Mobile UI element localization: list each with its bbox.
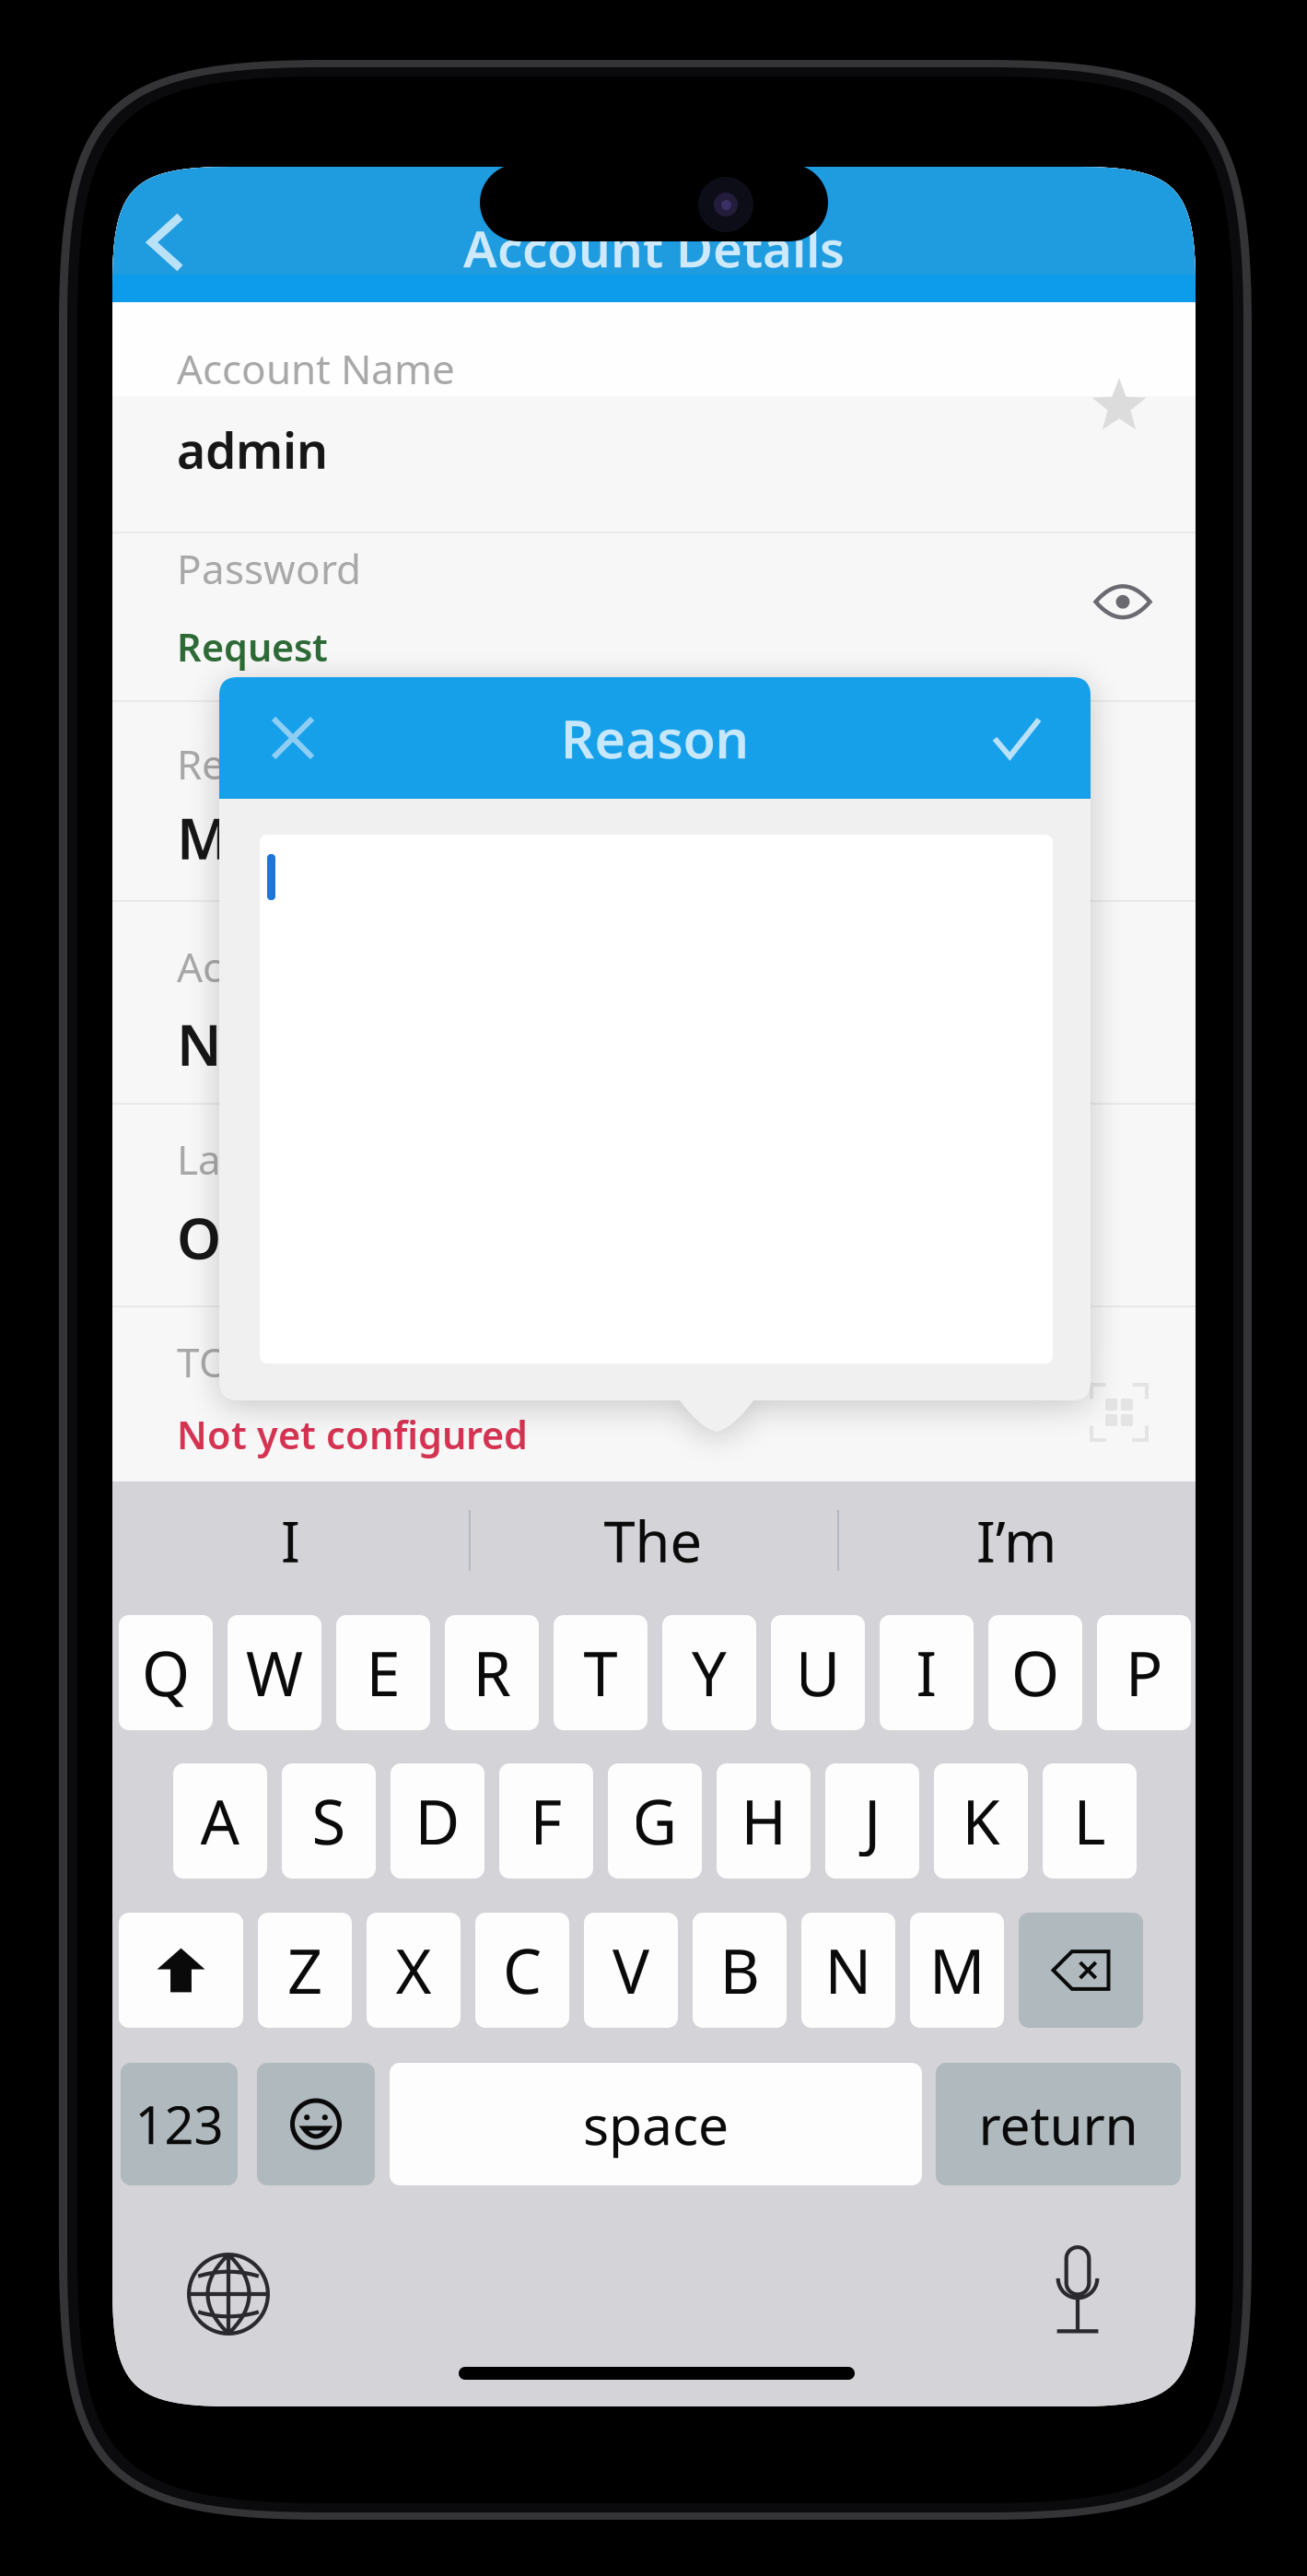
staticText: Account Name: [177, 342, 455, 395]
button[interactable]: return: [936, 2063, 1181, 2185]
staticText: Z: [287, 1929, 322, 2011]
staticText: R: [473, 1632, 511, 1713]
button[interactable]: C: [475, 1913, 569, 2028]
staticText: N: [825, 1929, 872, 2011]
staticText: Not yet configured: [177, 1409, 528, 1460]
button[interactable]: N: [801, 1913, 895, 2028]
button[interactable]: T: [554, 1615, 648, 1730]
staticText: C: [503, 1929, 542, 2011]
button[interactable]: H: [717, 1763, 811, 1879]
button[interactable]: Emoji: [257, 2063, 375, 2185]
staticText: Reason: [560, 703, 749, 773]
button[interactable]: P: [1097, 1615, 1191, 1730]
button[interactable]: Dictation: [1052, 2242, 1103, 2337]
button[interactable]: D: [391, 1763, 484, 1879]
staticText: P: [1126, 1632, 1162, 1713]
staticText: 123: [135, 2090, 223, 2158]
staticText: F: [530, 1780, 562, 1862]
button[interactable]: Shift: [119, 1913, 243, 2028]
staticText: E: [366, 1632, 400, 1713]
button[interactable]: S: [282, 1763, 376, 1879]
staticText: O: [1011, 1632, 1059, 1713]
button[interactable]: G: [608, 1763, 702, 1879]
staticText: S: [312, 1780, 346, 1862]
staticText: M: [929, 1929, 985, 2011]
staticText: I’m: [976, 1503, 1056, 1578]
button[interactable]: I’m: [837, 1481, 1196, 1599]
staticText: I: [916, 1632, 937, 1713]
button[interactable]: Q: [119, 1615, 213, 1730]
button[interactable]: Cancel: [219, 677, 367, 799]
button[interactable]: B: [693, 1913, 787, 2028]
button[interactable]: M: [910, 1913, 1004, 2028]
staticText: Account Details: [463, 214, 845, 281]
button[interactable]: L: [1043, 1763, 1137, 1879]
staticText: The: [604, 1503, 702, 1578]
staticText: Last Login: [177, 1132, 371, 1186]
staticText: A: [200, 1780, 240, 1862]
button[interactable]: I: [112, 1481, 469, 1599]
button[interactable]: W: [228, 1615, 321, 1730]
staticText: Remote Address: [177, 737, 488, 791]
staticText: Y: [692, 1632, 727, 1713]
button[interactable]: 123: [121, 2063, 238, 2185]
staticText: K: [962, 1780, 1000, 1862]
staticText: I: [281, 1503, 300, 1578]
staticText: T: [583, 1632, 618, 1713]
staticText: Request: [177, 622, 328, 672]
staticText: admin: [177, 417, 328, 482]
button[interactable]: U: [771, 1615, 865, 1730]
button[interactable]: O: [988, 1615, 1082, 1730]
button[interactable]: J: [825, 1763, 919, 1879]
staticText: L: [1074, 1780, 1106, 1862]
staticText: B: [720, 1929, 759, 2011]
button[interactable]: space: [390, 2063, 922, 2185]
button[interactable]: E: [336, 1615, 430, 1730]
button[interactable]: F: [499, 1763, 593, 1879]
staticText: return: [979, 2088, 1138, 2160]
button[interactable]: The: [469, 1481, 837, 1599]
button[interactable]: I: [880, 1615, 974, 1730]
button[interactable]: Confirm: [943, 677, 1091, 799]
button[interactable]: Delete: [1019, 1913, 1143, 2028]
staticText: U: [795, 1632, 840, 1713]
button[interactable]: Back: [112, 193, 219, 292]
staticText: X: [396, 1929, 432, 2011]
staticText: G: [632, 1780, 677, 1862]
button[interactable]: X: [367, 1913, 461, 2028]
staticText: Oct 14, 2024: [177, 1200, 511, 1275]
staticText: space: [583, 2088, 729, 2160]
staticText: J: [864, 1780, 881, 1862]
button[interactable]: Z: [258, 1913, 352, 2028]
staticText: D: [415, 1780, 460, 1862]
button[interactable]: Y: [662, 1615, 756, 1730]
button[interactable]: A: [173, 1763, 267, 1879]
button[interactable]: K: [934, 1763, 1028, 1879]
staticText: MyServer: [177, 800, 439, 875]
staticText: N/A: [177, 1006, 282, 1081]
button[interactable]: V: [584, 1913, 678, 2028]
button[interactable]: Switch keyboard: [187, 2253, 270, 2336]
button[interactable]: R: [445, 1615, 539, 1730]
staticText: V: [613, 1929, 649, 2011]
staticText: Account Type: [177, 940, 431, 993]
staticText: TOTP: [177, 1335, 276, 1389]
staticText: Q: [142, 1632, 190, 1713]
staticText: H: [741, 1780, 786, 1862]
staticText: W: [246, 1632, 303, 1713]
staticText: Password: [177, 542, 361, 595]
